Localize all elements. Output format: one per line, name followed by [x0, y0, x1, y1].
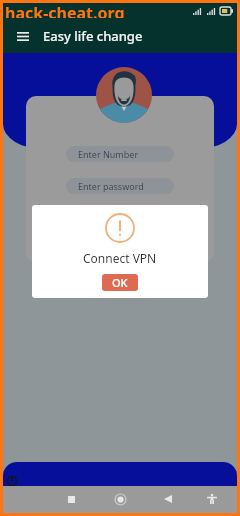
button[interactable]: OK: [102, 274, 138, 291]
button[interactable]: Enter Number: [66, 146, 174, 162]
staticText: OK: [112, 275, 128, 290]
staticText: Enter Number: [78, 148, 139, 160]
button[interactable]: Home: [109, 488, 131, 510]
button[interactable]: Open navigation menu: [10, 19, 36, 53]
button[interactable]: Power: [6, 475, 18, 486]
staticText: hack-cheat.org: [5, 2, 125, 18]
button[interactable]: Back: [157, 488, 179, 510]
button[interactable]: Accessibility: [201, 488, 223, 510]
staticText: Easy life change: [43, 27, 143, 45]
staticText: Connect VPN: [83, 250, 157, 266]
staticText: Enter password: [78, 180, 144, 192]
button[interactable]: Enter password: [66, 178, 174, 194]
button[interactable]: Recents: [60, 488, 82, 510]
